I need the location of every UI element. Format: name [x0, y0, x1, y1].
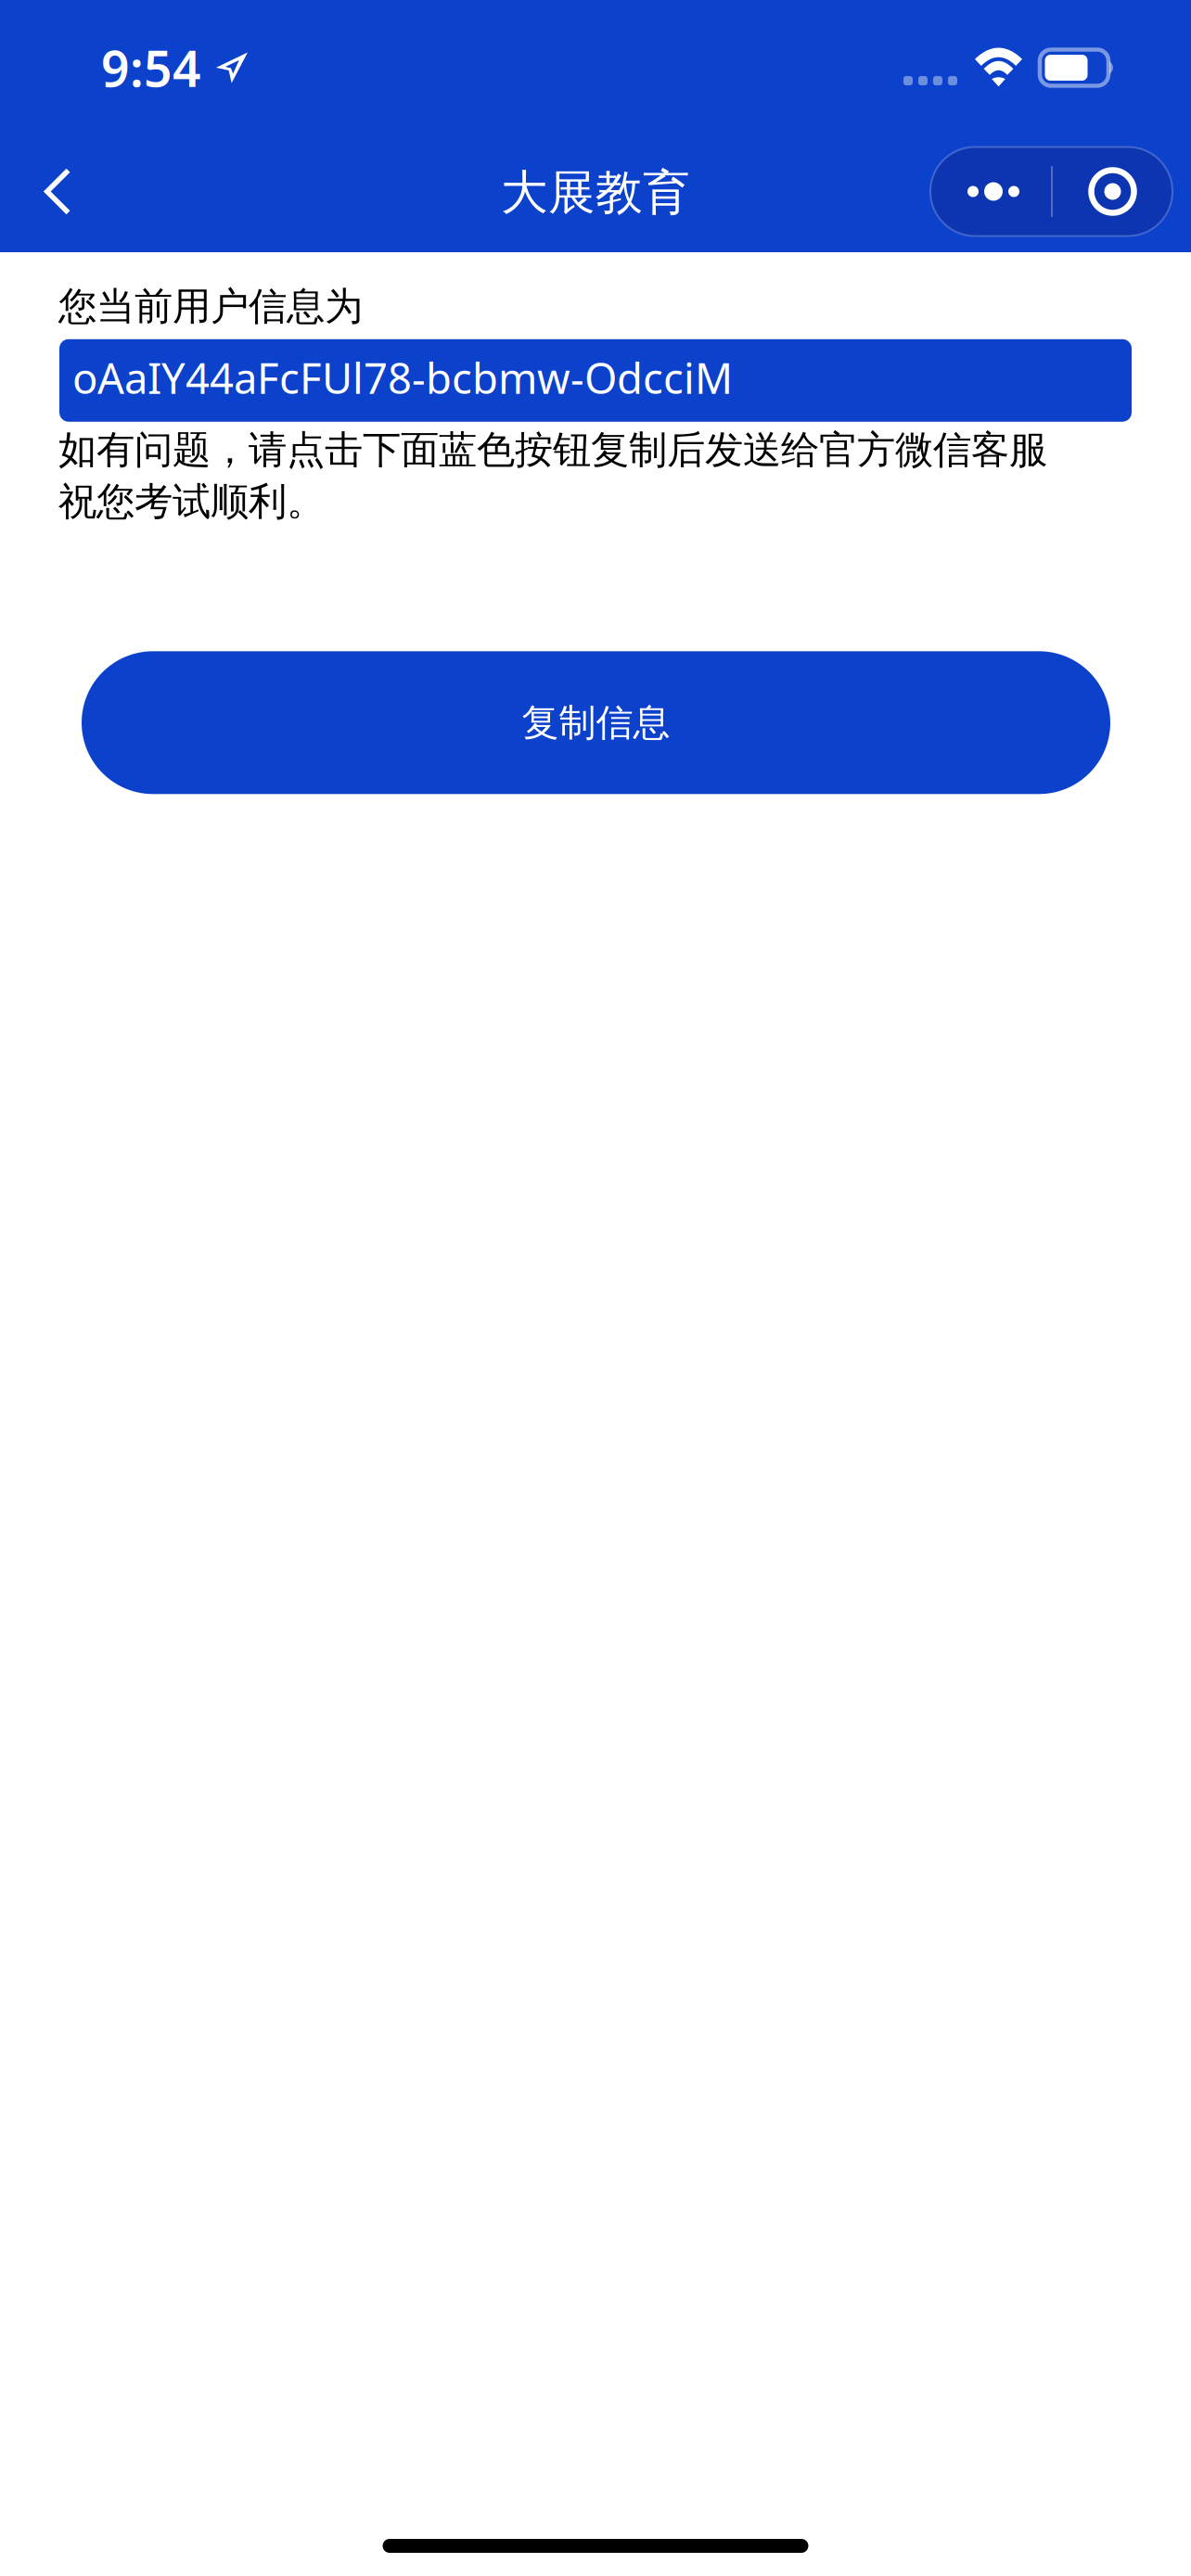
- button[interactable]: More: [930, 147, 1051, 236]
- staticText: oAaIY44aFcFUl78-bcbmw-OdcciM: [72, 350, 733, 406]
- staticText: 9:54: [101, 35, 201, 101]
- staticText: 如有问题，请点击下面蓝色按钮复制后发送给官方微信客服: [58, 426, 1047, 473]
- button[interactable]: Close mini program: [1053, 147, 1172, 236]
- staticText: 大展教育: [501, 164, 690, 222]
- button[interactable]: Back: [0, 147, 115, 236]
- staticText: 复制信息: [522, 700, 670, 745]
- staticText: 您当前用户信息为: [58, 283, 363, 330]
- staticText: 祝您考试顺利。: [58, 478, 325, 525]
- button[interactable]: 复制信息: [82, 651, 1110, 794]
